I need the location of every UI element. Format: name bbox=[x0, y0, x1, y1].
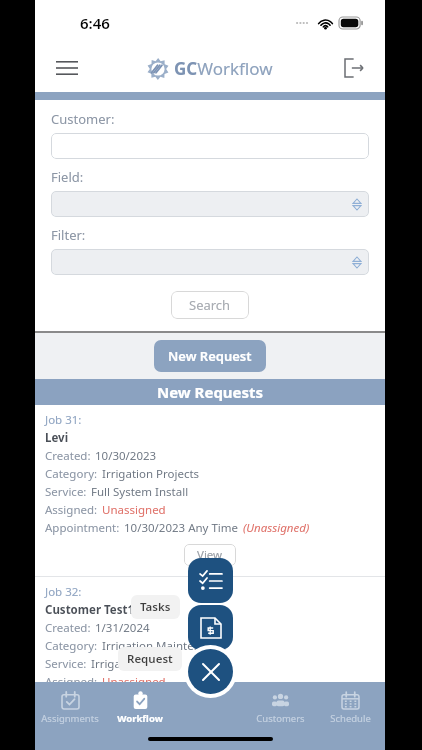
staticText: Field: bbox=[51, 168, 84, 186]
staticText: Request bbox=[127, 651, 173, 667]
staticText: Unassigned bbox=[102, 502, 166, 518]
staticText: Category: bbox=[45, 466, 98, 482]
staticText: Job 31: bbox=[45, 412, 82, 428]
button[interactable]: Job 32: bbox=[35, 577, 385, 728]
button[interactable]: Request bbox=[188, 605, 233, 650]
staticText: View bbox=[197, 547, 223, 563]
staticText: Job 32: bbox=[45, 584, 82, 600]
button[interactable]: Request bbox=[118, 647, 182, 671]
staticText: Customer Test1 bbox=[45, 602, 135, 618]
staticText: Irrigation Maintenance bbox=[102, 638, 227, 654]
staticText: 10/30/2023 bbox=[95, 448, 157, 464]
button[interactable]: Schedule bbox=[315, 690, 385, 727]
staticText: Search bbox=[189, 296, 231, 314]
staticText: Created: bbox=[45, 448, 91, 464]
staticText: Assigned: bbox=[45, 674, 98, 690]
button[interactable]: Workflow bbox=[105, 690, 175, 727]
button[interactable]: Tasks bbox=[188, 558, 233, 603]
staticText: Tasks bbox=[140, 599, 171, 615]
staticText: Irrigation Repair bbox=[91, 656, 180, 672]
staticText: Service: bbox=[45, 656, 87, 672]
staticText: GCWorkflow bbox=[174, 57, 273, 80]
staticText: Appointment: bbox=[45, 520, 120, 536]
staticText: (Unassigned) bbox=[243, 520, 310, 536]
staticText: 1/31/2024 bbox=[95, 620, 150, 636]
staticText: Full System Install bbox=[91, 484, 189, 500]
staticText: Unassigned bbox=[102, 674, 166, 690]
staticText: Schedule bbox=[330, 712, 371, 725]
staticText: Assignments bbox=[41, 712, 99, 725]
button[interactable]: New Request bbox=[154, 340, 266, 372]
staticText: Customer: bbox=[51, 110, 115, 128]
button[interactable] bbox=[51, 133, 369, 159]
button[interactable]: Job 31: bbox=[35, 405, 385, 576]
staticText: Levi bbox=[45, 430, 69, 446]
staticText: Created: bbox=[45, 620, 91, 636]
button[interactable]: Menu bbox=[47, 48, 87, 88]
staticText: New Requests bbox=[157, 382, 264, 402]
button[interactable]: View bbox=[184, 544, 236, 566]
button[interactable] bbox=[51, 249, 369, 275]
staticText: Workflow bbox=[117, 712, 163, 725]
button[interactable]: Close menu bbox=[188, 649, 233, 694]
staticText: Customers bbox=[256, 712, 305, 725]
staticText: 6:46 bbox=[80, 13, 110, 33]
button[interactable]: Assignments bbox=[35, 690, 105, 727]
staticText: 10/30/2023 Any Time bbox=[124, 520, 239, 536]
staticText: Irrigation Projects bbox=[102, 466, 200, 482]
button[interactable]: Tasks bbox=[131, 595, 180, 619]
button[interactable]: Log out bbox=[335, 49, 373, 87]
staticText: Category: bbox=[45, 638, 98, 654]
staticText: Filter: bbox=[51, 226, 86, 244]
staticText: Assigned: bbox=[45, 502, 98, 518]
button[interactable]: Search bbox=[171, 291, 249, 319]
staticText: Service: bbox=[45, 484, 87, 500]
staticText: New Request bbox=[168, 347, 252, 365]
button[interactable] bbox=[51, 191, 369, 217]
button[interactable]: Customers bbox=[245, 690, 315, 727]
